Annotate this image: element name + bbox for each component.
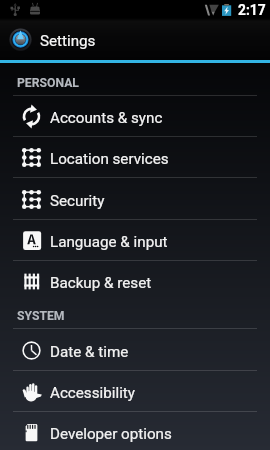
staticText: Accounts & sync (50, 109, 163, 127)
staticText: Security (50, 192, 105, 210)
button[interactable]: Accessibility (0, 371, 270, 412)
staticText: Developer options (50, 425, 172, 443)
button[interactable]: Developer options (0, 412, 270, 450)
staticText: Language & input (50, 233, 168, 251)
button[interactable]: Location services (0, 137, 270, 178)
button[interactable]: Security (0, 179, 270, 220)
other: Settings (9, 28, 32, 51)
button[interactable]: Language & input (0, 220, 270, 261)
button[interactable]: Accounts & sync (0, 96, 270, 137)
staticText: Date & time (50, 343, 129, 361)
staticText: Location services (50, 150, 169, 168)
button[interactable]: Date & time (0, 330, 270, 371)
staticText: 2:17 (238, 2, 266, 18)
button[interactable]: Backup & reset (0, 261, 270, 302)
staticText: PERSONAL (17, 76, 79, 90)
staticText: SYSTEM (17, 309, 65, 323)
staticText: Backup & reset (50, 274, 152, 292)
staticText: Accessibility (50, 384, 135, 402)
staticText: Settings (40, 32, 96, 50)
button[interactable]: Settings (0, 18, 270, 60)
